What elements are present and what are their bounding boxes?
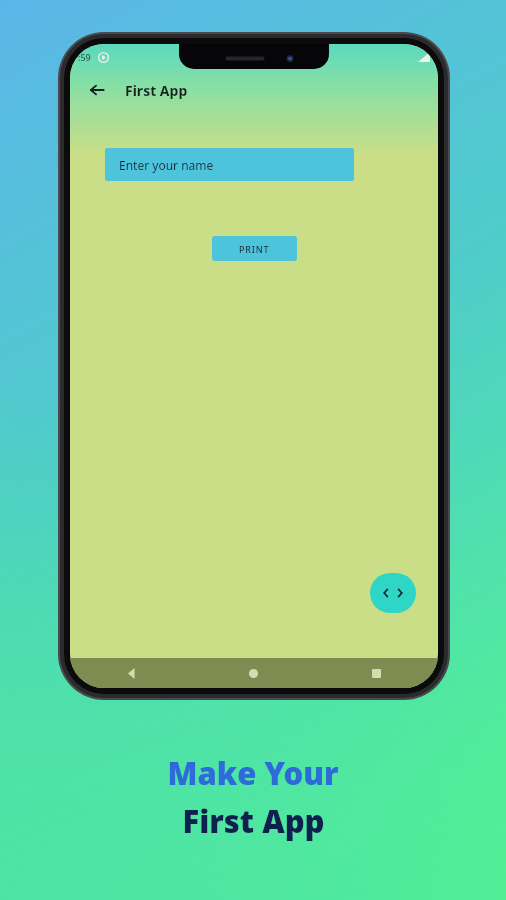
button[interactable]: PRINT xyxy=(212,236,297,261)
staticText: Enter your name xyxy=(119,157,214,173)
button[interactable]: Recents xyxy=(315,658,438,688)
staticText: PRINT xyxy=(239,243,270,255)
button[interactable]: Enter your name xyxy=(105,148,354,181)
button[interactable]: Back xyxy=(82,75,112,105)
staticText: First App xyxy=(182,800,325,842)
staticText: First App xyxy=(125,81,188,100)
button[interactable]: Code xyxy=(370,573,416,613)
staticText: Make Your xyxy=(167,752,339,794)
button[interactable]: Back xyxy=(70,658,192,688)
button[interactable]: Home xyxy=(192,658,315,688)
staticText: :59 xyxy=(78,51,91,63)
